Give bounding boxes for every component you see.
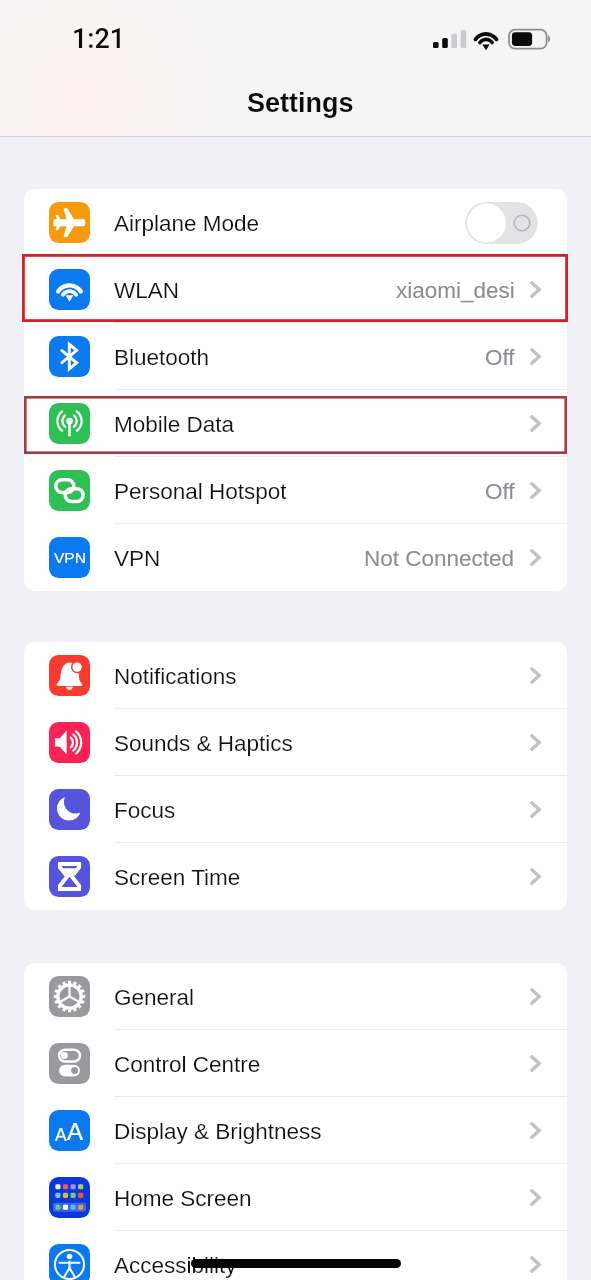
staticText: Settings xyxy=(247,88,354,118)
staticText: Not Connected xyxy=(364,546,515,571)
staticText: Focus xyxy=(114,798,176,823)
staticText: 1:21 xyxy=(72,23,126,55)
button[interactable]: VPN xyxy=(24,524,567,591)
staticText: A xyxy=(67,1118,84,1145)
button[interactable]: Accessibility xyxy=(24,1231,567,1280)
staticText: Home Screen xyxy=(114,1186,252,1211)
button[interactable]: Personal Hotspot xyxy=(24,457,567,524)
staticText: A xyxy=(55,1125,67,1145)
staticText: Screen Time xyxy=(114,865,241,890)
staticText: General xyxy=(114,985,195,1010)
staticText: Off xyxy=(485,345,515,370)
staticText: Accessibility xyxy=(114,1253,237,1278)
button[interactable]: General xyxy=(24,963,567,1030)
staticText: VPN xyxy=(114,546,161,571)
staticText: Personal Hotspot xyxy=(114,479,287,504)
staticText: Mobile Data xyxy=(114,412,235,437)
staticText: WLAN xyxy=(114,278,180,303)
staticText: VPN xyxy=(54,549,86,566)
button[interactable]: Notifications xyxy=(24,642,567,709)
button[interactable]: Toggle Airplane Mode xyxy=(465,202,538,244)
staticText: Display & Brightness xyxy=(114,1119,322,1144)
button[interactable]: Bluetooth xyxy=(24,323,567,390)
button[interactable]: A xyxy=(24,1097,567,1164)
button[interactable]: Home Screen xyxy=(24,1164,567,1231)
button[interactable]: Sounds & Haptics xyxy=(24,709,567,776)
staticText: Notifications xyxy=(114,664,237,689)
staticText: Airplane Mode xyxy=(114,211,260,236)
button[interactable]: WLAN xyxy=(24,256,567,323)
staticText: Control Centre xyxy=(114,1052,261,1077)
staticText: Off xyxy=(485,479,515,504)
button[interactable]: Screen Time xyxy=(24,843,567,910)
button[interactable]: Airplane Mode xyxy=(24,189,567,256)
staticText: Sounds & Haptics xyxy=(114,731,293,756)
staticText: xiaomi_desi xyxy=(396,278,515,303)
button[interactable]: Control Centre xyxy=(24,1030,567,1097)
staticText: Bluetooth xyxy=(114,345,210,370)
button[interactable]: Focus xyxy=(24,776,567,843)
button[interactable]: Mobile Data xyxy=(24,390,567,457)
